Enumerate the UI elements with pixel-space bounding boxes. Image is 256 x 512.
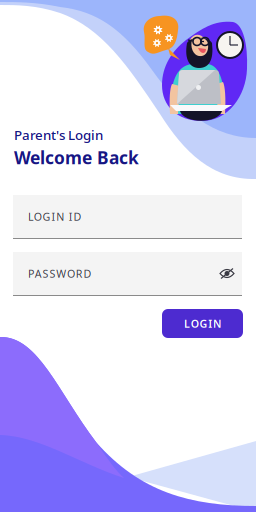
staticText: LOGIN ID	[28, 209, 82, 224]
staticText: PASSWORD	[28, 266, 92, 281]
staticText: LOGIN	[184, 316, 221, 331]
staticText: Parent's Login	[14, 126, 103, 144]
staticText: Welcome Back	[14, 146, 139, 169]
button[interactable]: LOGIN	[162, 309, 243, 338]
